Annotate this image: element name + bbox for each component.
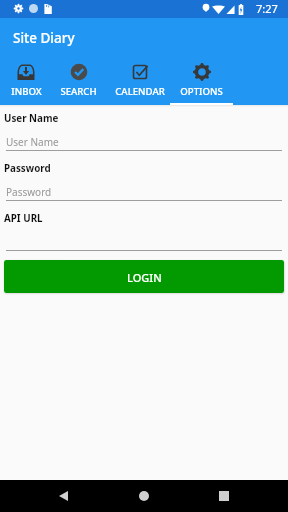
button[interactable]: LOGIN: [4, 260, 284, 293]
button[interactable]: SEARCH: [51, 58, 106, 105]
button[interactable]: Password: [0, 182, 288, 201]
button[interactable]: CALENDAR: [106, 58, 174, 105]
staticText: SEARCH: [60, 85, 97, 98]
staticText: Password: [6, 185, 52, 199]
staticText: 7:27: [256, 1, 278, 16]
staticText: User Name: [4, 112, 59, 125]
staticText: API URL: [4, 212, 43, 225]
staticText: INBOX: [11, 85, 42, 98]
button[interactable]: [0, 232, 288, 251]
button[interactable]: OPTIONS: [170, 58, 233, 105]
button[interactable]: Recents: [208, 486, 240, 506]
button[interactable]: INBOX: [2, 58, 50, 105]
staticText: OPTIONS: [180, 85, 223, 98]
staticText: Site Diary: [13, 29, 75, 47]
staticText: User Name: [6, 135, 59, 149]
button[interactable]: Back: [47, 486, 79, 506]
button[interactable]: Home: [128, 486, 160, 506]
button[interactable]: User Name: [0, 132, 288, 151]
staticText: CALENDAR: [115, 85, 165, 98]
staticText: LOGIN: [127, 270, 162, 285]
staticText: Password: [4, 162, 51, 175]
